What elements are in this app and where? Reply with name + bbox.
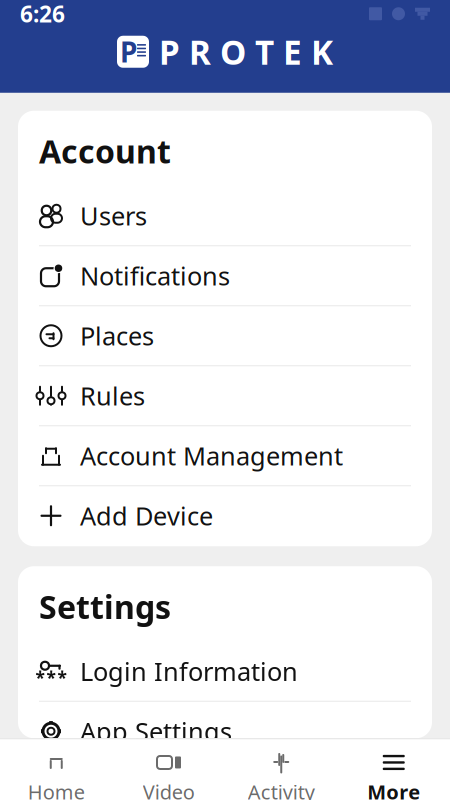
staticText: Home <box>28 778 85 800</box>
staticText: Activity <box>248 778 315 800</box>
staticText: Places <box>80 319 154 352</box>
staticText: P <box>120 33 137 70</box>
button[interactable]: Account Management <box>18 426 432 486</box>
staticText: Login Information <box>80 654 298 688</box>
staticText: * <box>35 666 44 689</box>
staticText: App Settings <box>80 714 232 748</box>
staticText: * <box>46 666 55 689</box>
button[interactable]: More <box>337 739 450 800</box>
staticText: Account Management <box>80 439 343 472</box>
staticText: Add Device <box>80 499 213 532</box>
staticText: Video <box>143 778 195 800</box>
staticText: Rules <box>80 379 145 412</box>
staticText: * <box>57 666 66 689</box>
button[interactable]: App Settings <box>18 702 432 762</box>
button[interactable]: Users <box>18 186 432 246</box>
staticText: Users <box>80 199 147 232</box>
staticText: Account <box>39 130 171 172</box>
staticText: 6:26 <box>20 0 65 29</box>
button[interactable]: Notifications <box>18 246 432 306</box>
button[interactable]: Activity <box>225 739 337 800</box>
staticText: More <box>367 778 420 800</box>
staticText: P R O T E K <box>159 30 333 74</box>
button[interactable]: Places <box>18 306 432 366</box>
staticText: Notifications <box>80 259 230 292</box>
button[interactable]: Home <box>0 739 112 800</box>
button[interactable]: Add Device <box>18 486 432 546</box>
button[interactable]: Video <box>112 739 225 800</box>
button[interactable]: * <box>18 642 432 702</box>
staticText: Settings <box>39 585 171 628</box>
button[interactable]: Rules <box>18 366 432 426</box>
